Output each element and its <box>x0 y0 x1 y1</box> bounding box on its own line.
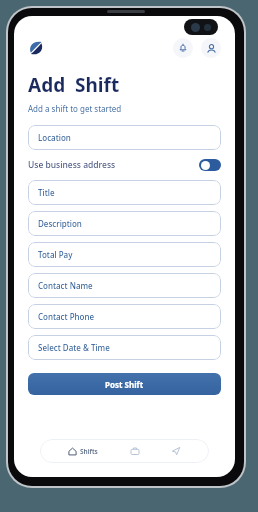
button[interactable]: Contact Name <box>28 273 221 298</box>
button[interactable]: Profile <box>201 38 221 58</box>
button[interactable]: Contact Phone <box>28 304 221 329</box>
button[interactable]: Shifts <box>64 444 102 459</box>
staticText: Post Shift <box>105 379 144 390</box>
staticText: Title <box>38 187 55 198</box>
button[interactable]: Use business address toggle <box>199 159 221 171</box>
staticText: Contact Phone <box>38 311 95 322</box>
button[interactable]: Send <box>167 442 185 460</box>
staticText: Shifts <box>80 447 98 456</box>
button[interactable]: Use business address <box>28 157 221 173</box>
button[interactable]: Location <box>28 125 221 150</box>
button[interactable]: Title <box>28 180 221 205</box>
staticText: Select Date & Time <box>38 342 110 353</box>
staticText: Contact Name <box>38 280 93 291</box>
staticText: Use business address <box>28 159 116 171</box>
button[interactable]: Post Shift <box>28 373 221 395</box>
button[interactable]: Notifications <box>173 38 193 58</box>
button[interactable]: Jobs <box>126 442 144 460</box>
button[interactable]: Description <box>28 211 221 236</box>
staticText: Description <box>38 218 82 229</box>
staticText: Add Shift <box>28 72 120 98</box>
staticText: Total Pay <box>38 249 73 260</box>
button[interactable]: Total Pay <box>28 242 221 267</box>
staticText: Add a shift to get started <box>28 103 122 114</box>
button[interactable]: Select Date & Time <box>28 335 221 360</box>
button[interactable]: App logo <box>28 40 44 56</box>
staticText: Location <box>38 132 71 143</box>
